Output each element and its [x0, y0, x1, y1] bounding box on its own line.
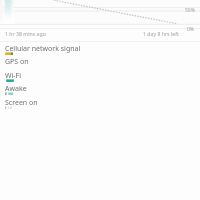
staticText: GPS on: [5, 57, 29, 67]
staticText: Cellular network signal: [5, 44, 81, 54]
button[interactable]: Cellular network signal: [0, 43, 200, 57]
staticText: Wi-Fi: [5, 71, 22, 81]
button[interactable]: Wi-Fi: [0, 70, 200, 84]
staticText: 50%: [185, 7, 195, 14]
staticText: Screen on: [5, 98, 38, 108]
button[interactable]: Awake: [0, 83, 200, 97]
button[interactable]: GPS on: [0, 56, 200, 70]
staticText: 0%: [187, 26, 195, 33]
button[interactable]: Screen on: [0, 97, 200, 111]
staticText: Awake: [5, 84, 27, 94]
staticText: 1 day 8 hrs left: [143, 30, 179, 37]
staticText: 1 hr 38 mins ago: [5, 30, 46, 37]
